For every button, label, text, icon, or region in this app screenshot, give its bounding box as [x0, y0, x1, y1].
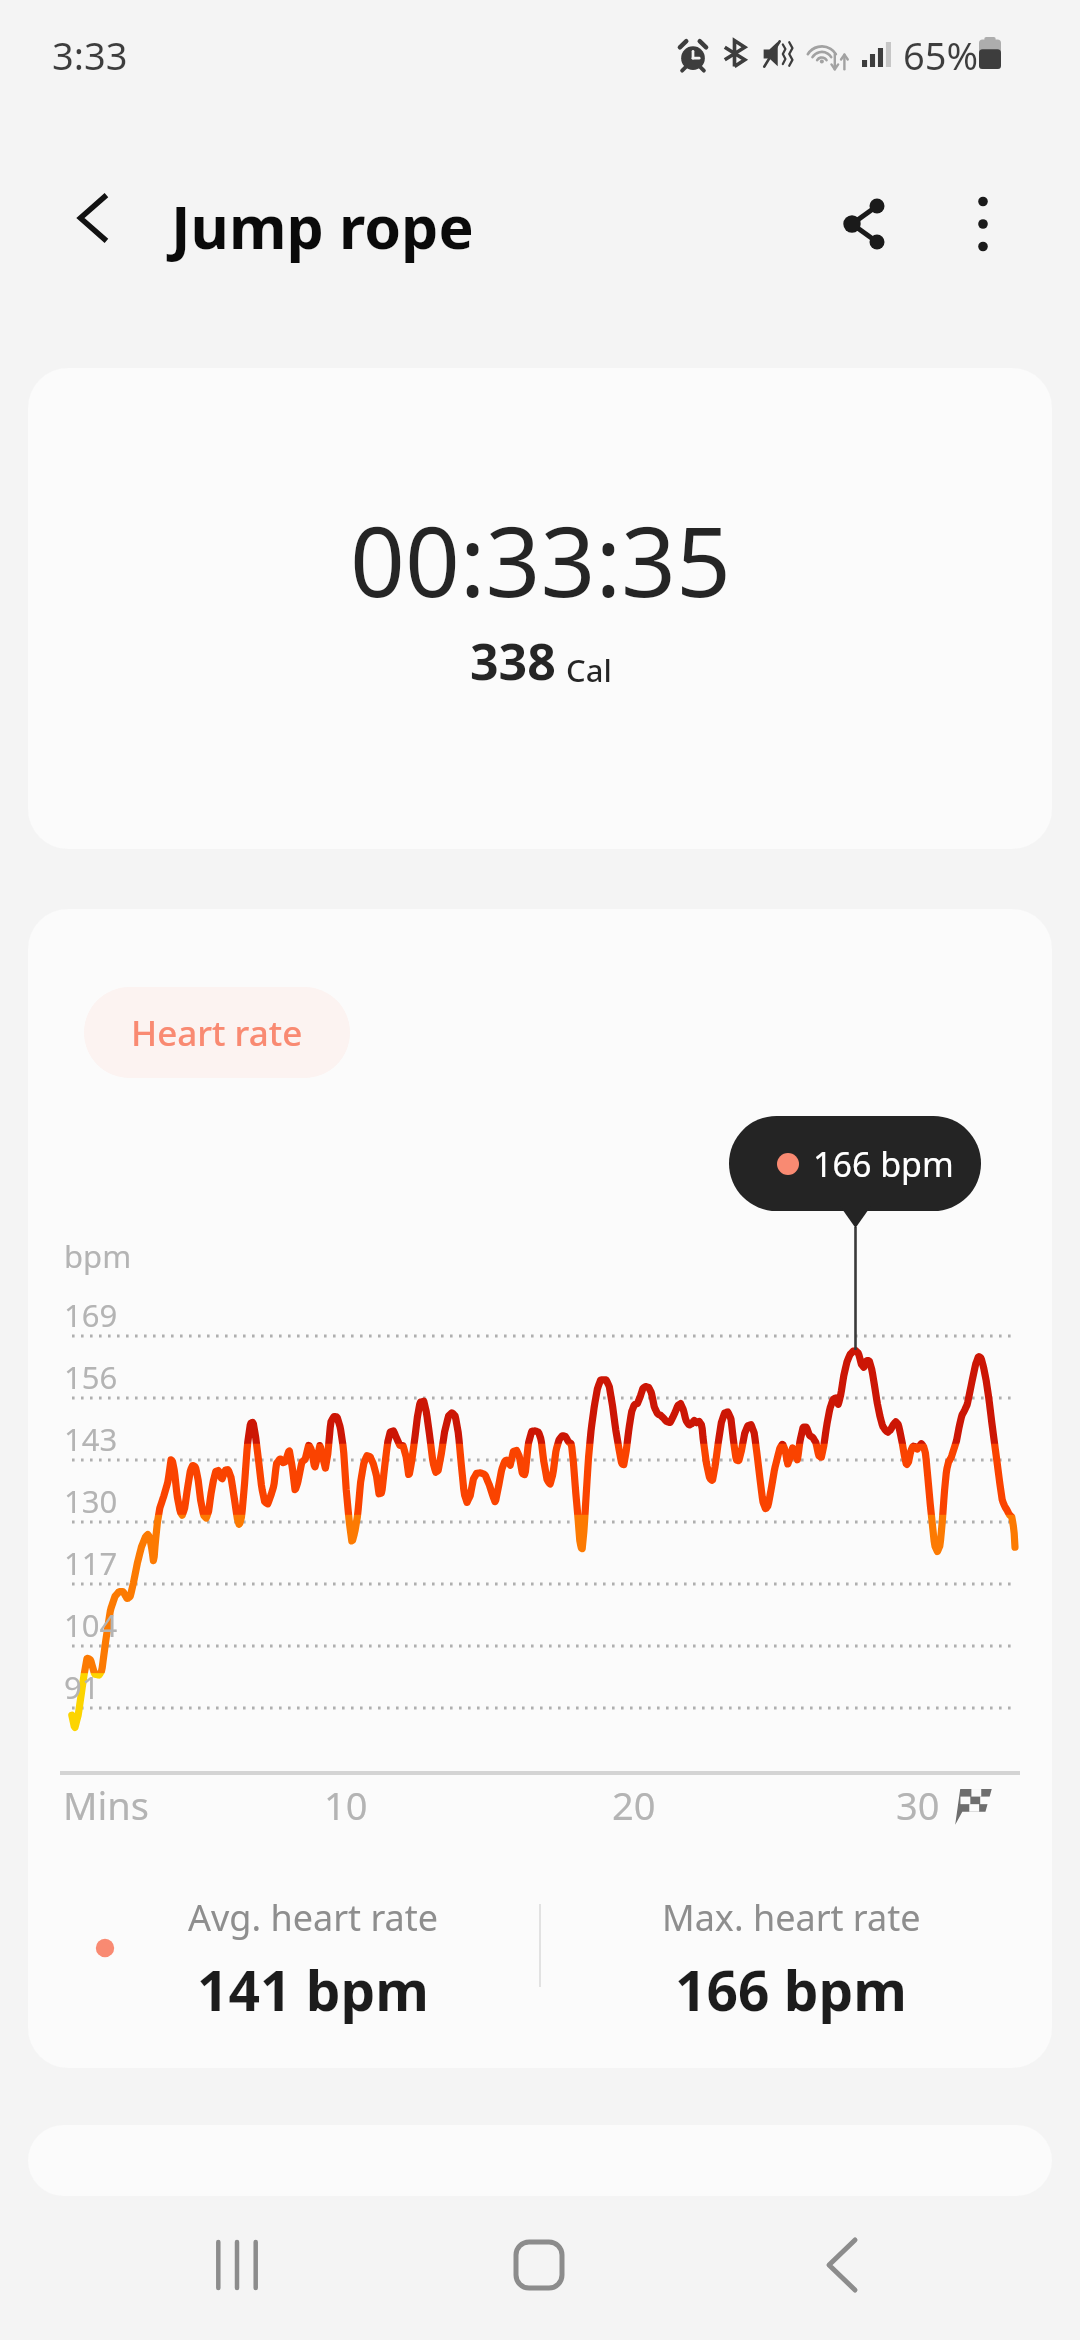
- button[interactable]: Heart rate: [28, 909, 1052, 2068]
- staticText: Heart rate: [131, 1009, 303, 1057]
- button[interactable]: 00:33:35: [28, 368, 1052, 849]
- staticText: Max. heart rate: [662, 1893, 921, 1942]
- staticText: 156: [64, 1356, 118, 1398]
- staticText: Jump rope: [171, 186, 474, 266]
- staticText: 104: [64, 1604, 118, 1646]
- staticText: 141 bpm: [197, 1952, 429, 2027]
- button[interactable]: Heart rate: [84, 987, 350, 1078]
- staticText: 143: [64, 1418, 118, 1460]
- button[interactable]: Back: [782, 2205, 902, 2325]
- button[interactable]: 166 bpm: [729, 1116, 981, 1211]
- staticText: 30: [896, 1779, 940, 1831]
- staticText: 166 bpm: [813, 1141, 954, 1187]
- button[interactable]: More options: [933, 174, 1033, 274]
- staticText: 65%: [903, 29, 979, 81]
- staticText: 3:33: [52, 29, 128, 81]
- staticText: bpm: [64, 1235, 132, 1277]
- staticText: 10: [324, 1779, 368, 1831]
- button[interactable]: Recent apps: [177, 2205, 297, 2325]
- staticText: 20: [612, 1779, 656, 1831]
- staticText: 166 bpm: [675, 1952, 907, 2027]
- staticText: Avg. heart rate: [188, 1893, 439, 1942]
- button[interactable]: Share: [816, 174, 916, 274]
- staticText: 338: [470, 627, 556, 695]
- button[interactable]: Back: [45, 168, 145, 268]
- staticText: 91: [64, 1666, 100, 1708]
- staticText: 130: [64, 1480, 118, 1522]
- staticText: Cal: [566, 649, 612, 691]
- staticText: 00:33:35: [350, 494, 731, 625]
- button[interactable]: Home: [479, 2205, 599, 2325]
- staticText: Mins: [63, 1779, 149, 1831]
- button[interactable]: Max. heart rate: [591, 1893, 991, 2027]
- staticText: 169: [64, 1294, 118, 1336]
- button[interactable]: Avg. heart rate: [113, 1893, 513, 2027]
- staticText: 117: [64, 1542, 118, 1584]
